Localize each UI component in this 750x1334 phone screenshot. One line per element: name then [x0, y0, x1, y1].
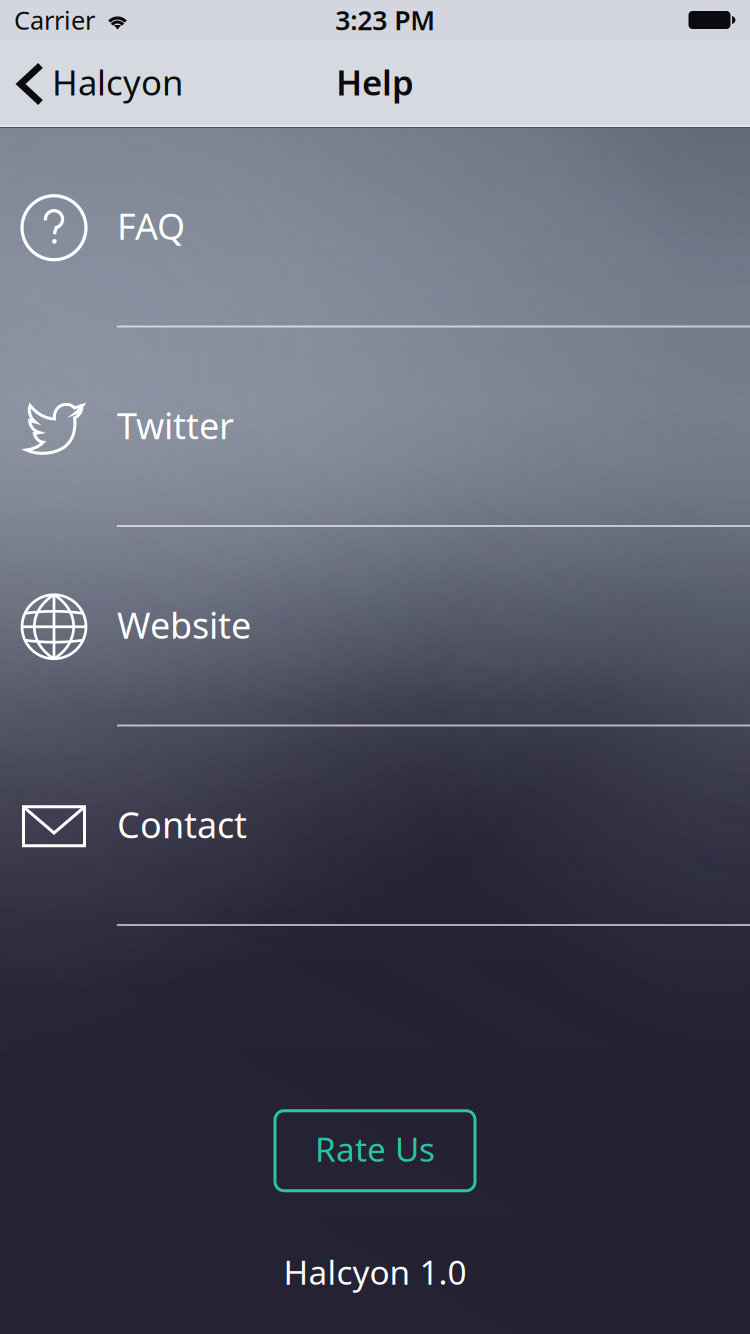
staticText: FAQ [117, 202, 185, 250]
staticText: Halcyon 1.0 [283, 1250, 466, 1294]
button[interactable]: Halcyon [0, 40, 201, 128]
staticText: Contact [117, 800, 247, 848]
button[interactable]: Website [0, 527, 750, 726]
staticText: 3:23 PM [335, 2, 435, 38]
button[interactable]: Rate Us [275, 1111, 475, 1191]
button[interactable]: Twitter [0, 327, 750, 527]
button[interactable]: FAQ [0, 128, 750, 327]
staticText: Rate Us [315, 1127, 435, 1171]
staticText: Help [336, 59, 414, 105]
staticText: Carrier [14, 3, 95, 37]
staticText: Twitter [117, 401, 234, 449]
button[interactable]: Contact [0, 726, 750, 926]
staticText: Halcyon [52, 59, 183, 105]
staticText: Website [117, 601, 251, 649]
